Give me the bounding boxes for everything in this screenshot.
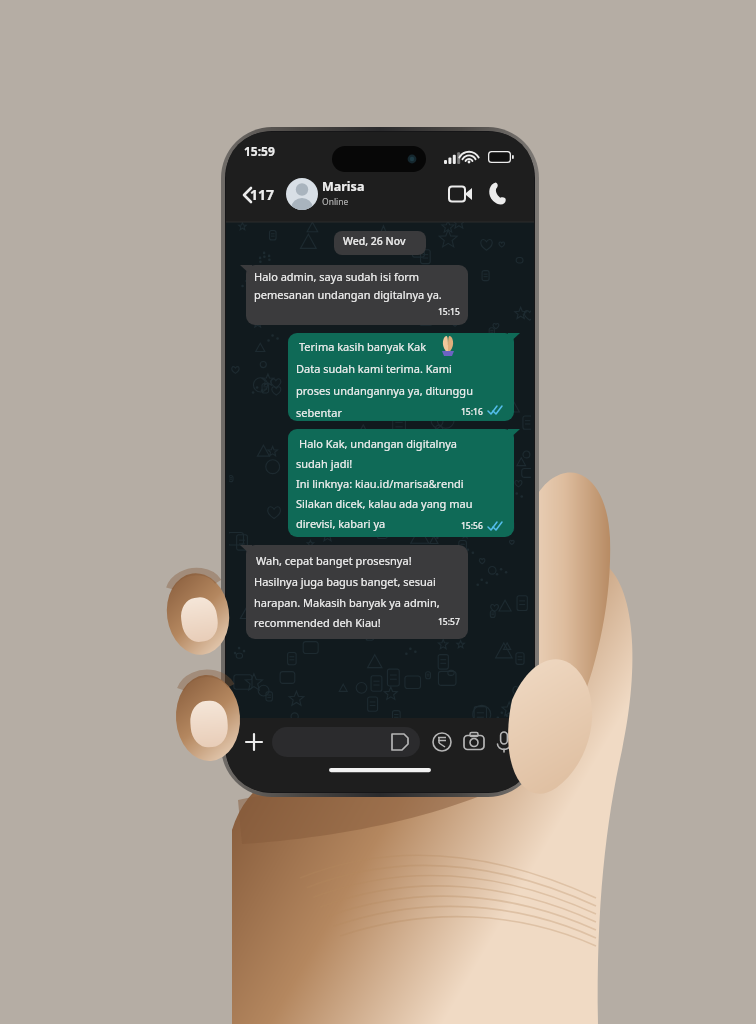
button[interactable]: Voice message: [496, 723, 528, 755]
staticText: Data sudah kami terima. Kami: [296, 361, 452, 376]
button[interactable]: Back: [232, 176, 280, 210]
staticText: 15:15: [438, 306, 460, 318]
staticText: Ini linknya: kiau.id/marisa&rendi: [296, 476, 464, 491]
staticText: sudah jadi!: [296, 456, 353, 471]
staticText: Silakan dicek, kalau ada yang mau: [296, 496, 473, 511]
button[interactable]: Payment: [432, 723, 464, 755]
staticText: 15:56: [461, 520, 483, 532]
button[interactable]: Message: [272, 723, 424, 755]
staticText: Online: [322, 196, 349, 208]
button[interactable]: Attach: [238, 721, 276, 757]
staticText: Wah, cepat banget prosesnya!: [256, 553, 412, 568]
button[interactable]: Voice call: [480, 179, 514, 211]
staticText: harapan. Makasih banyak ya admin,: [254, 595, 440, 610]
staticText: Halo Kak, undangan digitalnya: [299, 436, 458, 451]
staticText: Wed, 26 Nov: [343, 234, 406, 248]
staticText: 15:16: [461, 406, 483, 418]
staticText: 15:59: [244, 143, 275, 159]
staticText: 15:57: [438, 616, 460, 628]
staticText: Halo admin, saya sudah isi form: [254, 269, 420, 284]
staticText: Hasilnya juga bagus banget, sesuai: [254, 574, 436, 589]
button[interactable]: Video call: [444, 179, 480, 211]
staticText: direvisi, kabari ya: [296, 516, 386, 531]
staticText: 117: [250, 185, 275, 204]
staticText: proses undangannya ya, ditunggu: [296, 383, 473, 398]
button[interactable]: Contact info: [286, 173, 418, 215]
staticText: pemesanan undangan digitalnya ya.: [254, 287, 442, 302]
staticText: recommended deh Kiau!: [254, 615, 381, 630]
staticText: sebentar: [296, 405, 342, 420]
staticText: Marisa: [322, 178, 365, 195]
button[interactable]: Camera: [464, 723, 498, 755]
staticText: Terima kasih banyak Kak: [299, 339, 427, 354]
